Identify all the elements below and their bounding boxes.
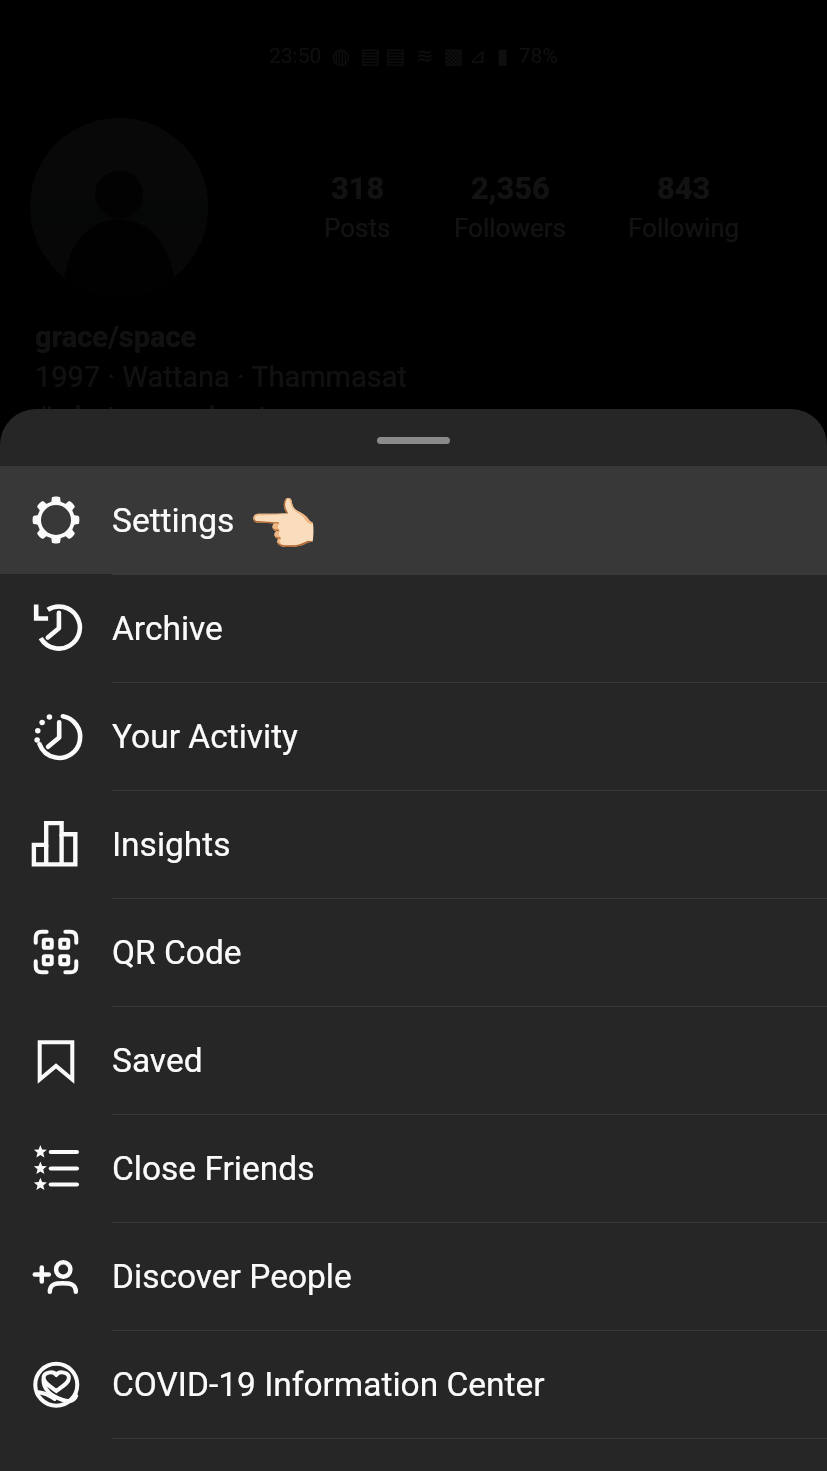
button[interactable]: COVID-19 Information Center (0, 1330, 827, 1438)
staticText: Saved (112, 1041, 203, 1080)
button[interactable]: Your Activity (0, 682, 827, 790)
staticText: 👈🏻 (247, 492, 318, 559)
staticText: 843 (657, 170, 711, 206)
staticText: 1997 · Wattana · Thammasat (35, 360, 408, 394)
staticText: Your Activity (112, 717, 298, 756)
staticText: Archive (112, 609, 223, 648)
staticText: Posts (324, 213, 391, 243)
button[interactable]: Settings (0, 466, 827, 574)
staticText: 23:50 ◍ ▤ ▤ ≋ ▩ ⊿ ▮ 78% (269, 44, 558, 69)
staticText: COVID-19 Information Center (112, 1365, 545, 1404)
staticText: Insights (112, 825, 231, 864)
staticText: #whatspaceshoots (35, 400, 282, 434)
staticText: 318 (331, 170, 385, 206)
staticText: Close Friends (112, 1149, 315, 1188)
button[interactable]: QR Code (0, 898, 827, 1006)
button[interactable]: Discover People (0, 1222, 827, 1330)
button[interactable]: Archive (0, 574, 827, 682)
button[interactable]: Insights (0, 790, 827, 898)
staticText: 2,356 (471, 170, 550, 206)
staticText: Settings (112, 501, 235, 540)
staticText: grace/space (35, 320, 197, 354)
button[interactable]: Saved (0, 1006, 827, 1114)
staticText: Followers (454, 213, 566, 243)
button[interactable]: Close Friends (0, 1114, 827, 1222)
staticText: Discover People (112, 1257, 352, 1296)
staticText: QR Code (112, 933, 242, 972)
staticText: Following (628, 213, 740, 243)
